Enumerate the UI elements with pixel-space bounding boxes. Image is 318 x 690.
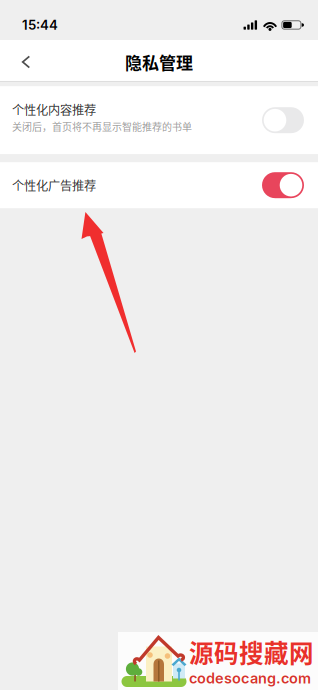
staticText: 源码搜藏网 [189,634,314,669]
staticText: 个性化内容推荐 [12,101,96,118]
staticText: codesocang.com [189,669,311,687]
staticText: 隐私管理 [125,50,193,74]
button[interactable]: 个性化广告推荐 [0,162,318,208]
staticText: 个性化广告推荐 [12,176,96,194]
button[interactable]: 返回 [0,41,52,82]
staticText: 关闭后，首页将不再显示智能推荐的书单 [12,119,192,134]
button[interactable]: 个性化内容推荐 [0,86,318,154]
staticText: 15:44 [22,17,58,33]
